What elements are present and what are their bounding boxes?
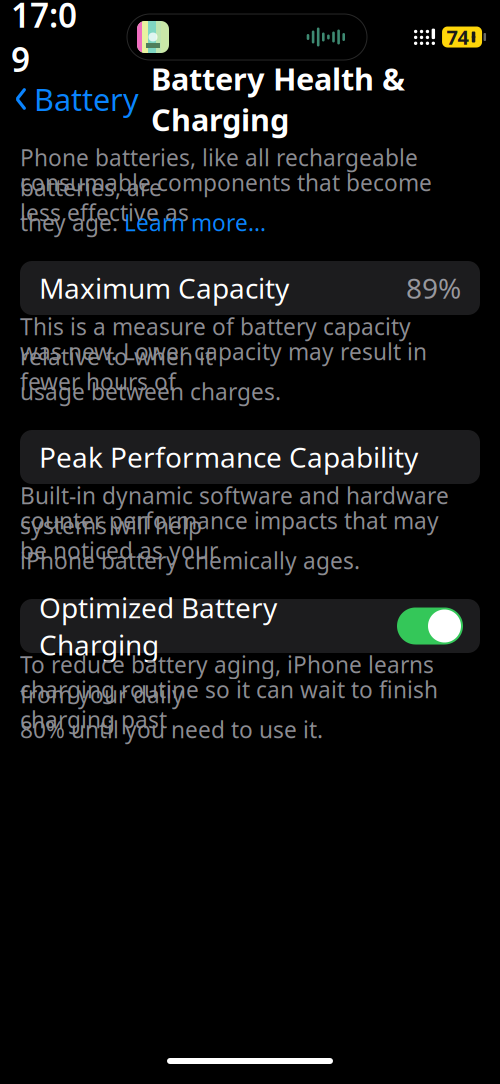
staticText: Optimized Battery Charging: [39, 589, 277, 663]
staticText: Maximum Capacity: [39, 269, 289, 307]
staticText: Phone batteries, like all rechargeable b…: [20, 142, 418, 203]
button[interactable]: Battery: [0, 71, 139, 127]
staticText: Battery: [34, 79, 139, 119]
staticText: Battery Health & Charging: [151, 58, 405, 140]
staticText: iPhone battery chemically ages.: [20, 545, 360, 575]
staticText: charging routine so it can wait to finis…: [20, 674, 438, 735]
button[interactable]: Optimized Battery Charging: [20, 599, 480, 653]
staticText: was new. Lower capacity may result in fe…: [20, 336, 427, 397]
staticText: 17:09: [11, 0, 77, 81]
staticText: To reduce battery aging, iPhone learns f…: [20, 649, 434, 710]
staticText: they age.: [20, 207, 124, 237]
staticText: consumable components that become less e…: [20, 167, 432, 228]
button[interactable]: Maximum Capacity: [20, 261, 480, 315]
staticText: Learn more...: [124, 207, 266, 237]
staticText: usage between charges.: [20, 376, 281, 406]
staticText: 74: [447, 24, 469, 50]
staticText: 89%: [406, 269, 461, 307]
staticText: Peak Performance Capability: [39, 438, 418, 476]
staticText: This is a measure of battery capacity re…: [20, 311, 411, 372]
button[interactable]: Peak Performance Capability: [20, 430, 480, 484]
staticText: 80% until you need to use it.: [20, 714, 323, 744]
button[interactable]: Learn more...: [124, 207, 266, 237]
staticText: Built-in dynamic software and hardware s…: [20, 480, 449, 541]
staticText: counter performance impacts that may be …: [20, 505, 439, 566]
